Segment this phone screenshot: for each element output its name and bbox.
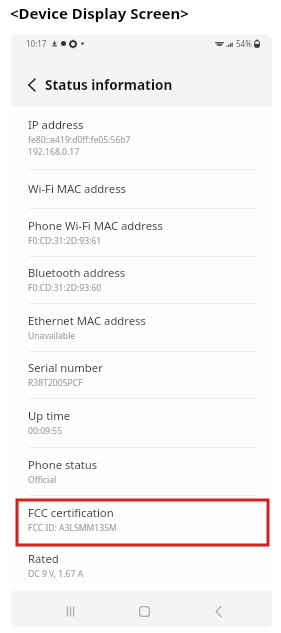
button[interactable]: Home: [124, 595, 164, 627]
button[interactable]: IP address: [11, 106, 272, 169]
button[interactable]: Wi-Fi MAC address: [11, 170, 272, 208]
staticText: Official: [28, 474, 57, 486]
staticText: Status information: [45, 76, 173, 94]
staticText: FCC certification: [28, 505, 114, 520]
staticText: Rated: [28, 551, 59, 566]
staticText: Unavailable: [28, 330, 76, 342]
staticText: Up time: [28, 408, 71, 423]
button[interactable]: FCC certification: [11, 496, 272, 543]
button[interactable]: Rated: [11, 542, 272, 589]
button[interactable]: Bluetooth address: [11, 257, 272, 303]
button[interactable]: Recent apps: [50, 595, 90, 627]
staticText: 10:17: [26, 38, 47, 49]
staticText: DC 9 V, 1.67 A: [28, 568, 84, 580]
staticText: Wi-Fi MAC address: [28, 181, 126, 196]
staticText: 192.168.0.17: [28, 146, 80, 158]
staticText: IP address: [28, 117, 84, 132]
staticText: Phone status: [28, 457, 98, 472]
staticText: 00:09:55: [28, 425, 63, 437]
staticText: 54%: [236, 38, 252, 49]
staticText: R38T2005PCF: [28, 377, 83, 389]
staticText: <Device Display Screen>: [10, 3, 189, 23]
button[interactable]: Up time: [11, 399, 272, 447]
button[interactable]: Ethernet MAC address: [11, 304, 272, 351]
button[interactable]: Serial number: [11, 352, 272, 398]
button[interactable]: Navigate up: [21, 72, 41, 98]
staticText: F0:CD:31:2D:93:61: [28, 235, 102, 247]
staticText: Serial number: [28, 360, 103, 375]
button[interactable]: Back: [198, 595, 238, 627]
staticText: Phone Wi-Fi MAC address: [28, 218, 163, 233]
button[interactable]: Phone Wi-Fi MAC address: [11, 209, 272, 257]
staticText: fe80::e419:d0ff:fe05:56b7: [28, 134, 131, 146]
staticText: FCC ID: A3LSMM135M: [28, 522, 117, 534]
staticText: Bluetooth address: [28, 265, 126, 280]
button[interactable]: Phone status: [11, 448, 272, 495]
staticText: Ethernet MAC address: [28, 313, 146, 328]
staticText: F0:CD:31:2D:93:60: [28, 282, 102, 294]
